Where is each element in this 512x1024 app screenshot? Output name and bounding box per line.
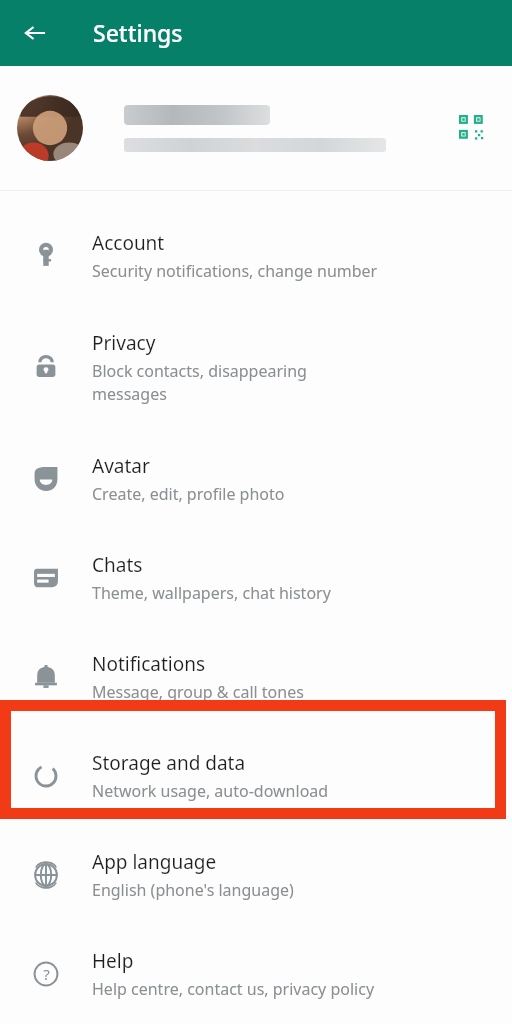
staticText: Notifications xyxy=(92,651,206,677)
staticText: Theme, wallpapers, chat history xyxy=(92,582,331,604)
staticText: Network usage, auto-download xyxy=(92,780,329,802)
staticText: Settings xyxy=(93,17,183,48)
staticText: Account xyxy=(92,230,165,256)
staticText: Security notifications, change number xyxy=(92,260,378,282)
staticText: Block contacts, disappearing messages xyxy=(92,360,307,405)
staticText: Message, group & call tones xyxy=(92,681,304,703)
staticText: Storage and data xyxy=(92,750,246,776)
staticText: App language xyxy=(92,849,217,875)
staticText: Avatar xyxy=(92,453,150,479)
button[interactable]: Avatar xyxy=(0,429,512,528)
staticText: Help xyxy=(92,948,134,974)
staticText: English (phone's language) xyxy=(92,879,294,901)
button[interactable]: Storage and data xyxy=(0,726,512,825)
staticText: Help centre, contact us, privacy policy xyxy=(92,978,375,1000)
staticText: Chats xyxy=(92,552,143,578)
button[interactable]: Back xyxy=(14,12,56,54)
staticText: Create, edit, profile photo xyxy=(92,483,285,505)
button[interactable]: Notifications xyxy=(0,627,512,726)
button[interactable]: QR code xyxy=(0,66,512,190)
staticText: Privacy xyxy=(92,330,156,356)
button[interactable]: ? xyxy=(0,924,512,1023)
button[interactable]: App language xyxy=(0,825,512,924)
staticText: ? xyxy=(43,964,50,984)
button[interactable]: Privacy xyxy=(0,305,512,429)
button[interactable]: Chats xyxy=(0,528,512,627)
button[interactable]: QR code xyxy=(452,108,492,148)
button[interactable]: Account xyxy=(0,206,512,305)
